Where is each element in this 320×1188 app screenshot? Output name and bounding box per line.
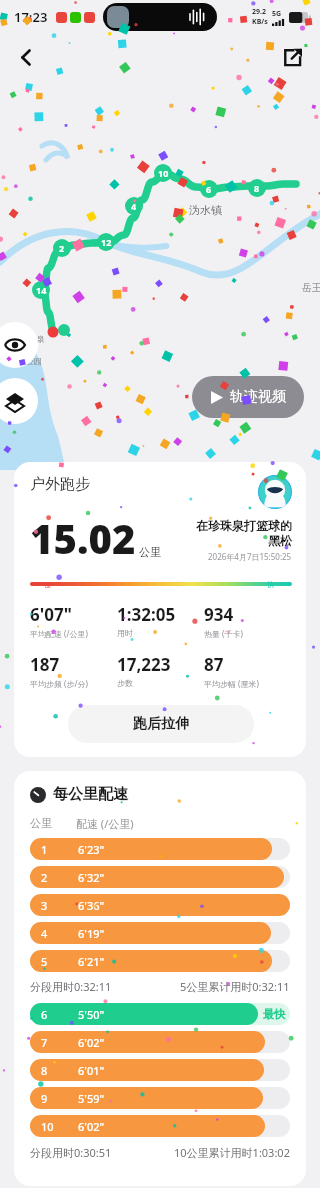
staticText: 15.02: [30, 511, 136, 565]
button[interactable]: 1: [30, 838, 290, 860]
staticText: KB/s: [252, 17, 268, 27]
staticText: 慢: [44, 580, 51, 589]
staticText: 6'02": [78, 1119, 105, 1134]
staticText: 公里: [139, 545, 161, 559]
button[interactable]: 图层: [0, 378, 38, 424]
staticText: 泉: [37, 334, 45, 344]
staticText: 5G: [272, 9, 282, 19]
staticText: 步数: [117, 678, 133, 688]
staticText: 10公里累计用时1:03:02: [174, 1145, 290, 1160]
staticText: 8: [254, 182, 260, 194]
staticText: 最快: [263, 1007, 285, 1021]
staticText: 6'19": [78, 926, 105, 941]
button[interactable]: 5: [30, 950, 290, 972]
staticText: 平均配速 (/公里): [30, 628, 88, 639]
staticText: 2: [59, 242, 65, 254]
staticText: 17:23: [14, 8, 48, 26]
staticText: 公园: [26, 356, 42, 366]
staticText: 5: [41, 954, 48, 969]
staticText: 3: [41, 898, 48, 913]
staticText: 分段用时0:30:51: [30, 1145, 112, 1160]
staticText: 岳王: [302, 281, 320, 294]
staticText: 6'32": [78, 870, 105, 885]
staticText: 29.2: [252, 7, 266, 17]
staticText: 6'01": [78, 1063, 105, 1078]
staticText: 187: [30, 653, 60, 676]
staticText: 5公里累计用时0:32:11: [180, 979, 290, 994]
staticText: 8: [41, 1063, 48, 1078]
staticText: 用时: [117, 628, 133, 638]
staticText: 1: [41, 842, 48, 857]
button[interactable]: 9: [30, 1087, 290, 1109]
button[interactable]: 4: [30, 922, 290, 944]
staticText: 分段用时0:32:11: [30, 979, 112, 994]
staticText: 快: [267, 580, 274, 589]
staticText: 12: [101, 236, 112, 248]
button[interactable]: 轨迹视频: [192, 376, 304, 418]
staticText: 在珍珠泉打篮球的: [196, 518, 292, 533]
button[interactable]: 6: [30, 1003, 290, 1025]
staticText: 5'59": [78, 1091, 105, 1106]
staticText: 5'50": [78, 1007, 105, 1022]
staticText: 4: [131, 200, 137, 212]
staticText: 2: [41, 870, 48, 885]
staticText: 934: [204, 603, 234, 626]
button[interactable]: 7: [30, 1031, 290, 1053]
staticText: 6'23": [78, 842, 105, 857]
staticText: 6'07": [30, 603, 72, 626]
button[interactable]: 3: [30, 894, 290, 916]
staticText: 黑松: [268, 533, 292, 548]
staticText: 14: [36, 284, 47, 296]
staticText: 6'02": [78, 1035, 105, 1050]
staticText: 10: [41, 1119, 54, 1134]
button[interactable]: 返回: [6, 37, 46, 77]
staticText: 热量 (千卡): [204, 628, 243, 639]
staticText: 7: [41, 1035, 48, 1050]
button[interactable]: 10: [30, 1115, 290, 1137]
button[interactable]: 跑后拉伸: [68, 705, 254, 743]
staticText: 平均步幅 (厘米): [204, 678, 259, 689]
staticText: 6'21": [78, 954, 105, 969]
staticText: 2026年4月7日15:50:25: [208, 551, 292, 562]
staticText: 4: [41, 926, 48, 941]
staticText: 每公里配速: [53, 785, 128, 804]
staticText: 跑后拉伸: [133, 715, 189, 733]
button[interactable]: 8: [30, 1059, 290, 1081]
staticText: 沩水镇: [189, 203, 222, 217]
staticText: 9: [41, 1091, 48, 1106]
staticText: 配速 (/公里): [76, 816, 134, 831]
staticText: 10: [158, 167, 169, 179]
staticText: 6: [206, 183, 212, 195]
staticText: 公里: [30, 816, 52, 830]
staticText: 87: [204, 653, 224, 676]
staticText: 平均步频 (步/分): [30, 678, 88, 689]
staticText: 1:32:05: [117, 603, 176, 626]
staticText: 轨迹视频: [230, 388, 286, 406]
button[interactable]: 分享: [272, 37, 312, 77]
staticText: 6'36": [78, 898, 105, 913]
staticText: 17,223: [117, 653, 171, 676]
button[interactable]: 显示轨迹: [0, 322, 38, 368]
staticText: 户外跑步: [30, 475, 90, 494]
button[interactable]: 2: [30, 866, 290, 888]
staticText: 6: [41, 1007, 48, 1022]
